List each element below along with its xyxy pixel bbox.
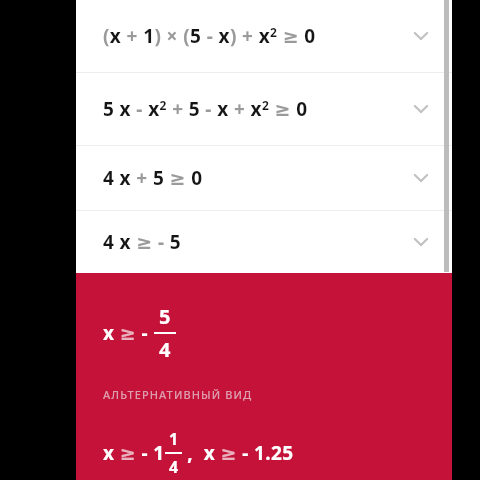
button[interactable]: 4 x + 5 ≥ 0 <box>76 146 452 210</box>
staticText: x ≥ - <box>103 320 154 346</box>
staticText: 1 <box>169 428 179 450</box>
staticText: 4 <box>169 456 179 478</box>
other: Expand step 2 <box>390 73 452 145</box>
other: Expand step 4 <box>390 211 452 273</box>
staticText: x ≥ - 1 <box>103 440 165 466</box>
button[interactable]: (x + 1) × (5 - x) + x2 ≥ 0 <box>76 0 452 72</box>
staticText: , x ≥ - 1.25 <box>182 440 294 466</box>
staticText: 5 x - x2 + 5 - x + x2 ≥ 0 <box>103 96 308 122</box>
staticText: АЛЬТЕРНАТИВНЫЙ ВИД <box>103 387 253 402</box>
staticText: 4 x + 5 ≥ 0 <box>103 165 203 191</box>
other: Expand step 3 <box>390 146 452 210</box>
staticText: 5 <box>159 303 171 330</box>
staticText: (x + 1) × (5 - x) + x2 ≥ 0 <box>103 23 316 49</box>
other: Expand step 1 <box>390 0 452 72</box>
staticText: 4 <box>159 336 171 363</box>
button[interactable]: 4 x ≥ - 5 <box>76 211 452 273</box>
staticText: 4 x ≥ - 5 <box>103 229 182 255</box>
button[interactable]: 5 x - x2 + 5 - x + x2 ≥ 0 <box>76 73 452 145</box>
